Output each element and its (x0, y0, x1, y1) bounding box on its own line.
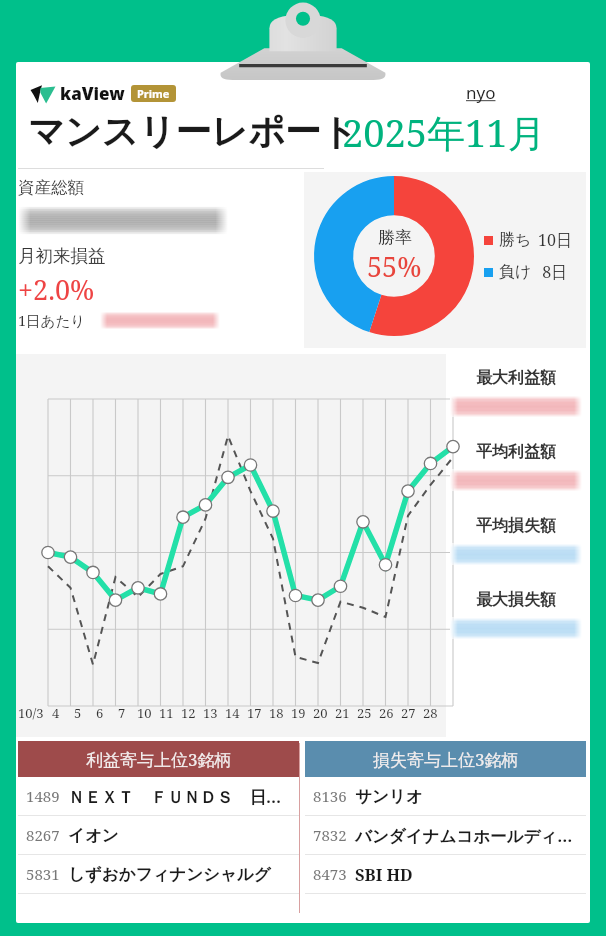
staticText: 13 (203, 704, 218, 722)
staticText: 5 (74, 704, 82, 722)
staticText: 4 (52, 704, 60, 722)
staticText: 12 (181, 704, 196, 722)
staticText: 11 (159, 704, 174, 722)
staticText: 6 (96, 704, 104, 722)
button[interactable]: 5831 (18, 855, 299, 893)
staticText: 14 (225, 704, 240, 722)
button[interactable]: 7832 (305, 816, 586, 854)
staticText: イオン (68, 825, 119, 846)
staticText: 7832 (313, 825, 347, 845)
staticText: 10 (137, 704, 152, 722)
staticText: 10/31 (18, 704, 45, 722)
staticText: 平均損失額 (476, 516, 556, 536)
staticText: ＮＥＸＴ ＦＵＮＤＳ 日… (68, 785, 282, 808)
staticText: 26 (379, 704, 394, 722)
staticText: 勝ち (499, 230, 532, 250)
button[interactable]: 利益寄与上位3銘柄 (18, 741, 299, 777)
staticText: 損失寄与上位3銘柄 (373, 748, 519, 771)
button[interactable]: 8136 (305, 777, 586, 815)
staticText: 8473 (313, 864, 347, 884)
staticText: SBI HD (355, 863, 413, 885)
staticText: 月初来損益 (18, 245, 106, 267)
staticText: 27 (401, 704, 416, 722)
staticText: 17 (247, 704, 262, 722)
staticText: 10日 (538, 229, 572, 251)
staticText: 20 (313, 704, 328, 722)
button[interactable]: 8267 (18, 816, 299, 854)
staticText: 1489 (26, 786, 60, 806)
other: Clipboard clip (219, 8, 387, 80)
staticText: kaView (60, 82, 125, 105)
staticText: 18 (269, 704, 284, 722)
button[interactable]: 1489 (18, 777, 299, 815)
staticText: バンダイナムコホールディ… (355, 824, 573, 847)
staticText: 利益寄与上位3銘柄 (86, 748, 232, 771)
staticText: サンリオ (355, 786, 423, 807)
staticText: 最大損失額 (476, 590, 556, 610)
staticText: 資産総額 (18, 177, 84, 198)
staticText: 21 (335, 704, 350, 722)
staticText: 25 (357, 704, 372, 722)
staticText: 8136 (313, 786, 347, 806)
staticText: 平均利益額 (476, 442, 556, 462)
staticText: nyo (466, 81, 496, 104)
staticText: マンスリーレポート (28, 109, 358, 154)
staticText: 19 (291, 704, 306, 722)
staticText: 7 (118, 704, 126, 722)
staticText: +2.0% (18, 271, 95, 308)
staticText: 8日 (538, 261, 568, 283)
staticText: 1日あたり (18, 310, 86, 330)
button[interactable]: 損失寄与上位3銘柄 (305, 741, 586, 777)
staticText: 負け (499, 262, 532, 282)
staticText: 55% (367, 248, 422, 285)
staticText: 勝率 (378, 227, 412, 248)
staticText: Prime (137, 86, 170, 101)
staticText: しずおかフィナンシャルグル… (68, 864, 299, 885)
staticText: 28 (423, 704, 438, 722)
button[interactable]: 8473 (305, 855, 586, 893)
staticText: 2025年11月 (342, 106, 546, 158)
staticText: 8267 (26, 825, 60, 845)
staticText: 5831 (26, 864, 60, 884)
staticText: 最大利益額 (476, 368, 556, 388)
